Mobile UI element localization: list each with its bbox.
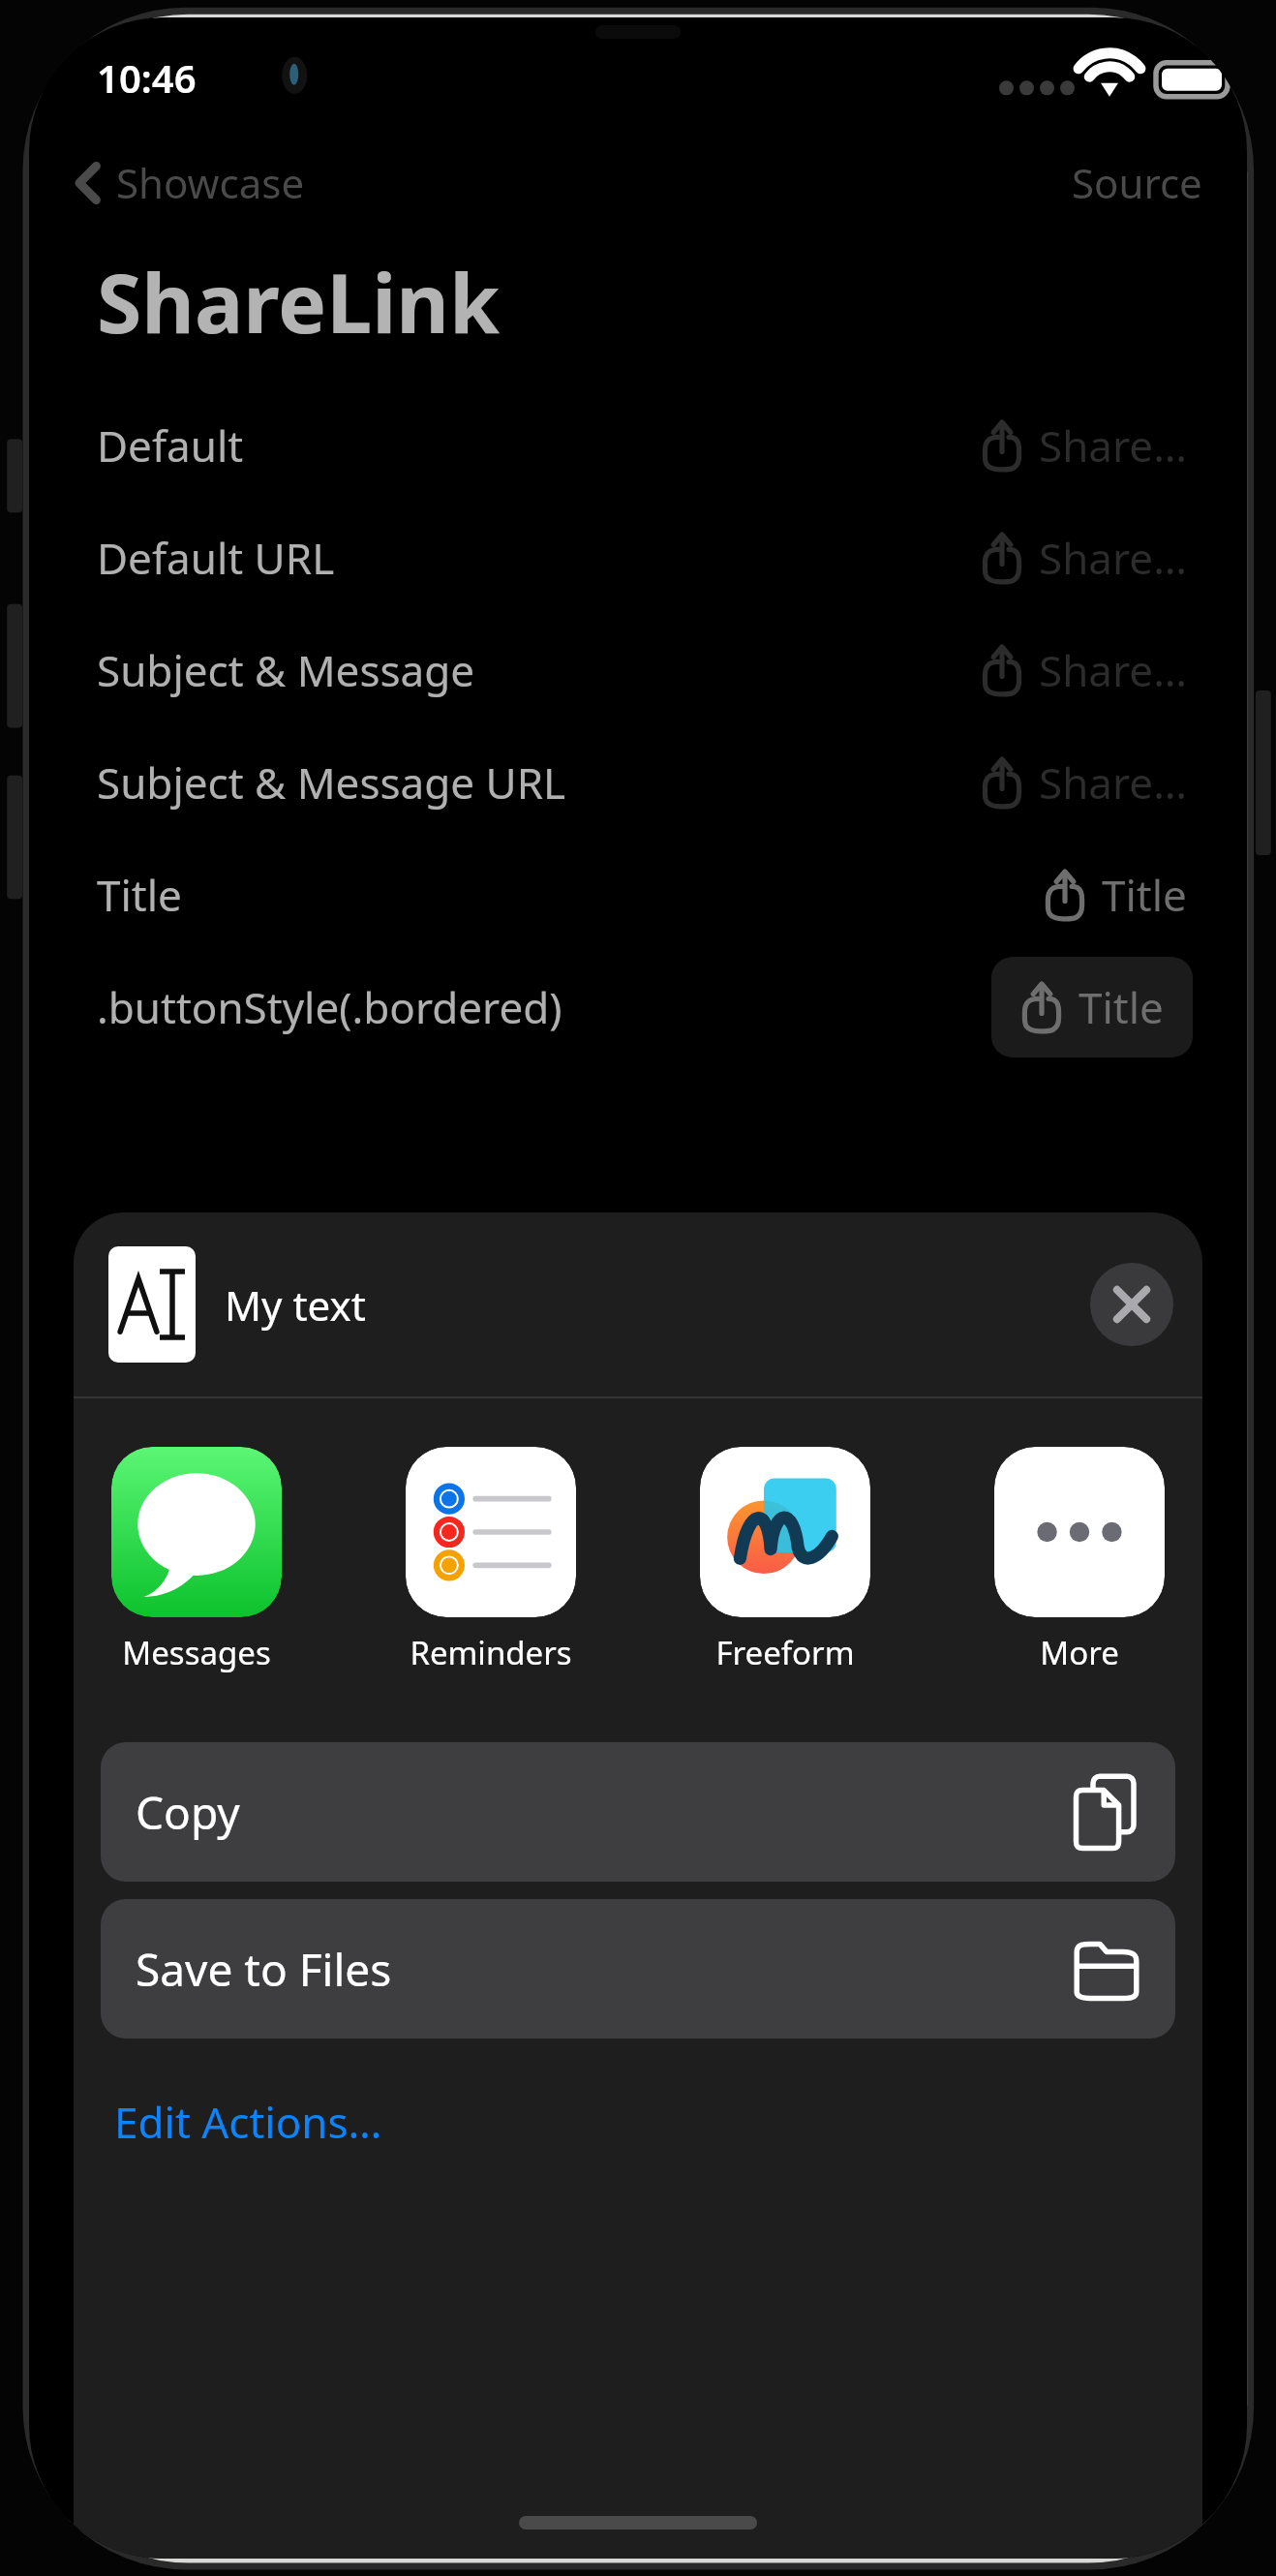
button[interactable]: Default	[29, 389, 1247, 502]
button[interactable]: More	[989, 1443, 1170, 1678]
button[interactable]: Share…	[975, 523, 1193, 593]
staticText: Edit Actions…	[114, 2093, 382, 2151]
button[interactable]: Subject & Message	[29, 614, 1247, 726]
button[interactable]: Copy	[101, 1742, 1175, 1882]
button[interactable]: Messages	[106, 1443, 287, 1678]
staticText: Save to Files	[136, 1939, 392, 2000]
button[interactable]: Subject & Message URL	[29, 726, 1247, 839]
button[interactable]: My text	[74, 1212, 1202, 1396]
staticText: Freeform	[715, 1631, 855, 1674]
staticText: .buttonStyle(.bordered)	[97, 978, 562, 1036]
button[interactable]: Title	[991, 957, 1193, 1058]
button[interactable]: Showcase	[68, 149, 311, 216]
button[interactable]: Source	[1066, 149, 1208, 216]
staticText: Copy	[136, 1782, 240, 1843]
staticText: Default URL	[97, 529, 335, 587]
button[interactable]: Title	[29, 839, 1247, 951]
button[interactable]: Share…	[975, 748, 1193, 817]
button[interactable]: Title	[1038, 860, 1193, 930]
staticText: Source	[1072, 155, 1202, 210]
staticText: 10:46	[97, 51, 197, 104]
staticText: Share…	[1039, 641, 1187, 699]
staticText: Subject & Message URL	[97, 753, 566, 812]
button[interactable]: Share…	[975, 635, 1193, 705]
staticText: Reminders	[410, 1631, 572, 1674]
staticText: Share…	[1039, 529, 1187, 587]
button[interactable]: Close	[1090, 1263, 1173, 1346]
button[interactable]: .buttonStyle(.bordered)	[29, 951, 1247, 1063]
staticText: ShareLink	[97, 246, 500, 356]
staticText: Title	[97, 866, 182, 924]
button[interactable]: Freeform	[695, 1443, 875, 1678]
button[interactable]: Reminders	[401, 1443, 581, 1678]
staticText: Title	[1079, 978, 1164, 1036]
staticText: Share…	[1039, 753, 1187, 812]
staticText: Messages	[122, 1631, 271, 1674]
staticText: Showcase	[116, 155, 305, 210]
staticText: Default	[97, 416, 244, 475]
button[interactable]: Save to Files	[101, 1899, 1175, 2039]
staticText: Subject & Message	[97, 641, 475, 699]
button[interactable]: Share…	[975, 411, 1193, 480]
staticText: Title	[1102, 866, 1187, 924]
staticText: Share…	[1039, 416, 1187, 475]
staticText: More	[1040, 1631, 1119, 1674]
button[interactable]: Edit Actions…	[106, 2083, 390, 2161]
button[interactable]: Default URL	[29, 502, 1247, 614]
other: More	[994, 1447, 1165, 1617]
staticText: My text	[225, 1277, 366, 1333]
